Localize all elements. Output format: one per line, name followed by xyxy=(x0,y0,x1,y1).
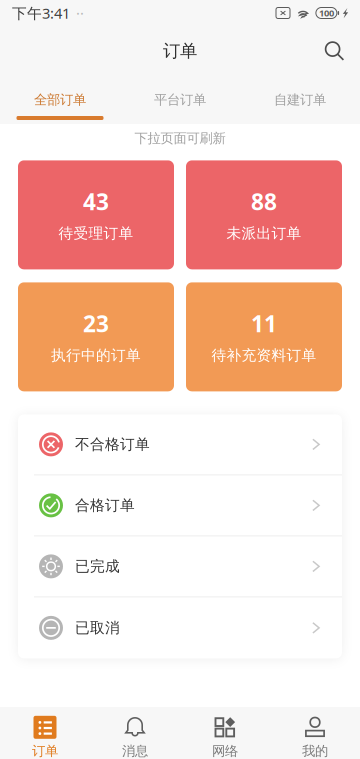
button[interactable]: 合格订单 xyxy=(18,475,342,536)
button[interactable]: 全部订单 xyxy=(0,76,120,124)
button[interactable]: 43 xyxy=(18,160,174,269)
staticText: 已完成 xyxy=(75,557,120,575)
staticText: 不合格订单 xyxy=(75,435,150,453)
staticText: 100 xyxy=(319,7,334,19)
staticText: 43 xyxy=(83,186,109,216)
button[interactable]: 88 xyxy=(186,160,342,269)
staticText: 下午3:41 xyxy=(12,3,70,23)
button[interactable]: 不合格订单 xyxy=(18,414,342,475)
staticText: 自建订单 xyxy=(274,92,326,108)
staticText: 下拉页面可刷新 xyxy=(134,130,225,146)
staticText: 23 xyxy=(83,308,109,338)
staticText: 消息 xyxy=(122,743,148,759)
staticText: 平台订单 xyxy=(154,92,206,108)
staticText: 未派出订单 xyxy=(226,224,301,242)
button[interactable]: 消息 xyxy=(90,707,180,759)
button[interactable]: 11 xyxy=(186,282,342,391)
staticText: 待补充资料订单 xyxy=(211,346,316,364)
button[interactable]: 已取消 xyxy=(18,597,342,658)
staticText: 执行中的订单 xyxy=(51,346,141,364)
button[interactable]: 网络 xyxy=(180,707,270,759)
staticText: 订单 xyxy=(163,40,197,62)
staticText: 已取消 xyxy=(75,619,120,637)
button[interactable]: 订单 xyxy=(0,707,90,759)
staticText: 待受理订单 xyxy=(58,224,133,242)
button[interactable]: 23 xyxy=(18,282,174,391)
button[interactable]: 我的 xyxy=(270,707,360,759)
staticText: 全部订单 xyxy=(34,92,86,108)
staticText: ·· xyxy=(76,3,84,23)
button[interactable]: 已完成 xyxy=(18,536,342,597)
staticText: 网络 xyxy=(212,743,238,759)
staticText: 我的 xyxy=(302,743,328,759)
staticText: 11 xyxy=(251,308,277,338)
button[interactable]: 自建订单 xyxy=(240,76,360,124)
button[interactable]: 平台订单 xyxy=(120,76,240,124)
staticText: 合格订单 xyxy=(75,496,135,514)
staticText: 88 xyxy=(251,186,277,216)
staticText: 订单 xyxy=(32,743,58,759)
button[interactable]: 搜索 xyxy=(312,30,360,71)
